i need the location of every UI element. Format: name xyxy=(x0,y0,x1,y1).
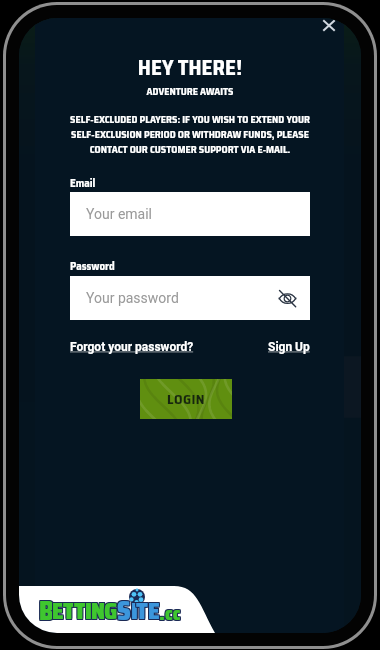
staticText: T xyxy=(64,594,76,624)
staticText: Your email xyxy=(86,206,153,222)
staticText: I xyxy=(85,593,92,623)
staticText: E xyxy=(147,594,159,624)
staticText: I xyxy=(84,592,91,622)
staticText: E xyxy=(53,593,65,623)
staticText: T xyxy=(135,593,147,623)
staticText: S xyxy=(118,591,132,621)
staticText: T xyxy=(74,594,86,624)
staticText: T xyxy=(137,593,149,623)
button[interactable]: Sign Up xyxy=(268,340,310,354)
staticText: B xyxy=(39,590,54,620)
staticText: G xyxy=(104,592,118,622)
staticText: SELF-EXCLUDED PLAYERS: IF YOU WISH TO EX… xyxy=(62,112,318,157)
staticText: E xyxy=(149,594,161,624)
button[interactable]: Show password xyxy=(274,285,300,311)
staticText: B xyxy=(38,589,53,619)
staticText: T xyxy=(73,593,85,623)
staticText: T xyxy=(75,593,87,623)
staticText: B xyxy=(40,589,55,619)
staticText: G xyxy=(105,592,119,622)
staticText: B xyxy=(38,591,53,621)
staticText: G xyxy=(103,592,117,622)
staticText: G xyxy=(105,594,119,624)
button[interactable]: Close xyxy=(314,18,343,40)
staticText: S xyxy=(117,591,131,621)
staticText: T xyxy=(135,594,147,624)
staticText: T xyxy=(62,594,74,624)
staticText: E xyxy=(147,593,159,623)
staticText: T xyxy=(64,592,76,622)
staticText: I xyxy=(132,594,139,624)
button[interactable]: Your email xyxy=(70,192,310,236)
staticText: B xyxy=(40,591,55,621)
staticText: .cc xyxy=(158,598,180,628)
staticText: G xyxy=(104,593,118,623)
staticText: HEY THERE! xyxy=(19,51,361,84)
staticText: G xyxy=(103,594,117,624)
staticText: .cc xyxy=(159,599,181,629)
staticText: E xyxy=(51,592,63,622)
staticText: I xyxy=(84,593,91,623)
staticText: E xyxy=(149,593,161,623)
staticText: S xyxy=(117,589,131,619)
staticText: E xyxy=(53,592,65,622)
staticText: .cc xyxy=(158,599,180,629)
staticText: I xyxy=(131,592,138,622)
staticText: N xyxy=(91,593,106,623)
staticText: S xyxy=(118,589,132,619)
staticText: ADVENTURE AWAITS xyxy=(19,84,361,100)
staticText: T xyxy=(136,594,148,624)
staticText: T xyxy=(63,594,75,624)
staticText: E xyxy=(52,593,64,623)
staticText: Email xyxy=(70,175,96,192)
staticText: I xyxy=(132,593,139,623)
staticText: I xyxy=(130,594,137,624)
button[interactable]: Forgot your password? xyxy=(70,340,194,354)
staticText: E xyxy=(52,592,64,622)
button[interactable]: LOGIN xyxy=(140,379,232,419)
staticText: S xyxy=(116,591,130,621)
staticText: E xyxy=(51,593,63,623)
staticText: E xyxy=(53,594,65,624)
staticText: .cc xyxy=(160,598,182,628)
staticText: E xyxy=(148,594,160,624)
staticText: E xyxy=(148,593,160,623)
staticText: I xyxy=(132,592,139,622)
staticText: N xyxy=(90,592,105,622)
staticText: E xyxy=(147,592,159,622)
staticText: I xyxy=(130,593,137,623)
staticText: T xyxy=(63,593,75,623)
staticText: T xyxy=(62,593,74,623)
staticText: T xyxy=(64,593,76,623)
staticText: T xyxy=(75,594,87,624)
staticText: G xyxy=(105,593,119,623)
staticText: .cc xyxy=(160,599,182,629)
staticText: T xyxy=(73,592,85,622)
staticText: S xyxy=(118,590,132,620)
staticText: E xyxy=(52,594,64,624)
staticText: T xyxy=(62,592,74,622)
staticText: .cc xyxy=(159,598,181,628)
button[interactable]: Your password xyxy=(70,276,310,320)
staticText: S xyxy=(117,590,131,620)
staticText: N xyxy=(92,593,107,623)
staticText: T xyxy=(73,594,85,624)
staticText: I xyxy=(131,594,138,624)
staticText: I xyxy=(86,593,93,623)
staticText: I xyxy=(130,592,137,622)
staticText: I xyxy=(86,592,93,622)
staticText: T xyxy=(137,594,149,624)
staticText: B xyxy=(40,590,55,620)
staticText: T xyxy=(136,592,148,622)
staticText: S xyxy=(116,590,130,620)
staticText: N xyxy=(92,594,107,624)
staticText: I xyxy=(86,594,93,624)
staticText: G xyxy=(103,593,117,623)
staticText: E xyxy=(148,592,160,622)
staticText: N xyxy=(91,592,106,622)
staticText: I xyxy=(84,594,91,624)
staticText: B xyxy=(39,591,54,621)
staticText: I xyxy=(85,594,92,624)
staticText: Your password xyxy=(86,290,179,306)
staticText: T xyxy=(74,592,86,622)
